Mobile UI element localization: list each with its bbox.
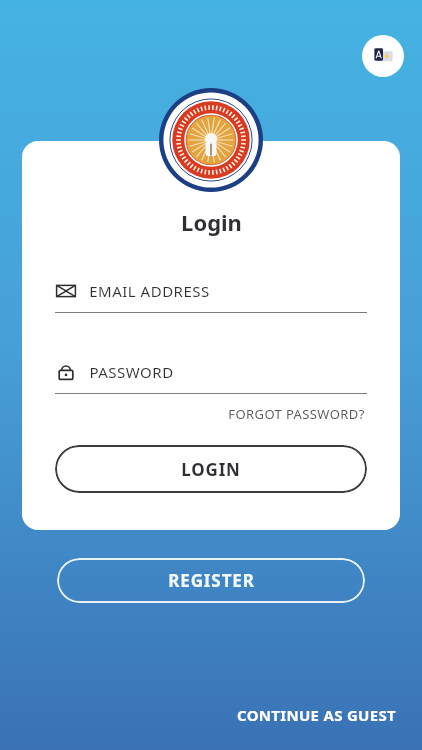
button[interactable]: CONTINUE AS GUEST	[233, 702, 400, 728]
staticText: LOGIN	[181, 458, 241, 481]
staticText: PASSWORD	[89, 362, 174, 382]
staticText: CONTINUE AS GUEST	[237, 705, 396, 725]
button[interactable]: PASSWORD	[55, 361, 367, 394]
staticText: FORGOT PASSWORD?	[228, 405, 365, 423]
button[interactable]: LOGIN	[55, 445, 367, 493]
staticText: EMAIL ADDRESS	[89, 281, 210, 301]
button[interactable]: Accessibility options	[362, 35, 404, 77]
button[interactable]: EMAIL ADDRESS	[55, 280, 367, 313]
staticText: REGISTER	[168, 569, 255, 592]
staticText: Login	[181, 207, 242, 237]
button[interactable]: FORGOT PASSWORD?	[226, 403, 367, 425]
button[interactable]: REGISTER	[57, 558, 365, 603]
